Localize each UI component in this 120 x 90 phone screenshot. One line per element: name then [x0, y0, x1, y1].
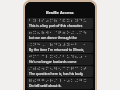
other: Braille line [29, 79, 91, 82]
staticText: but we can dance through the journey... [29, 35, 91, 40]
other: Braille line [29, 31, 91, 34]
staticText: By the time I'm returned to Illinois, th… [29, 47, 91, 52]
button[interactable]: Braille line [27, 18, 93, 29]
staticText: Braille Access [46, 10, 74, 16]
button[interactable]: Braille line [27, 78, 93, 89]
other: Braille line [29, 43, 91, 46]
other: Braille line [29, 55, 91, 58]
button[interactable]: Braille line [27, 66, 93, 77]
staticText: Do tell until about it. [29, 83, 62, 88]
other: Braille line [29, 19, 91, 22]
button[interactable]: Braille line [27, 30, 93, 41]
staticText: He's no longer bastards come problem. [29, 59, 91, 64]
staticText: The question here is, has his body disc.… [29, 71, 91, 76]
other: Braille line [29, 67, 91, 70]
button[interactable]: Braille line [27, 54, 93, 65]
button[interactable]: Braille line [27, 42, 93, 53]
staticText: This is a key part of this character. [29, 23, 83, 28]
